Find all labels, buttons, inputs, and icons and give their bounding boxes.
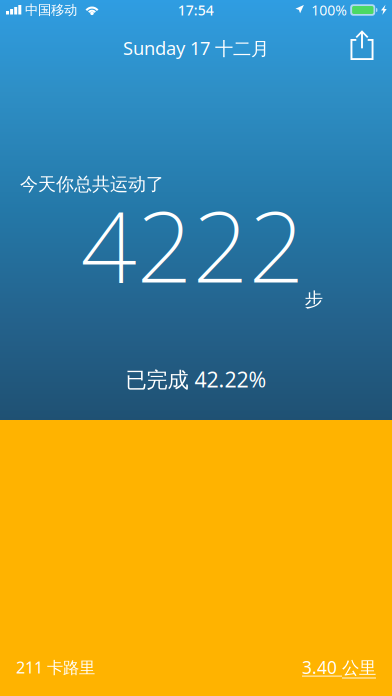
staticText: 步 (304, 288, 323, 311)
staticText: 100% (311, 0, 347, 20)
staticText: 今天你总共运动了 (20, 173, 164, 196)
staticText: 已完成 42.22% (125, 365, 266, 394)
staticText: 17:54 (178, 0, 214, 20)
staticText: 211 卡路里 (16, 656, 95, 678)
staticText: Sunday 17 十二月 (123, 35, 269, 60)
button[interactable]: 3.40 公里 (302, 655, 376, 679)
staticText: 3.40 公里 (302, 655, 376, 679)
button[interactable]: Share (340, 17, 384, 67)
staticText: 4222 (80, 177, 304, 311)
staticText: 中国移动 (25, 2, 77, 18)
